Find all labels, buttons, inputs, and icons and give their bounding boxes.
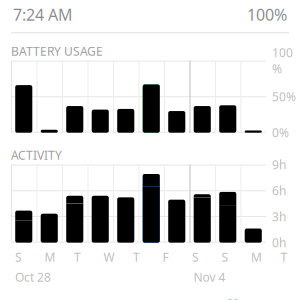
staticText: Screen Off bbox=[150, 295, 237, 300]
staticText: S bbox=[192, 249, 199, 265]
staticText: 100% bbox=[272, 45, 293, 77]
staticText: Oct 28 bbox=[15, 269, 51, 285]
staticText: 6h bbox=[272, 183, 286, 199]
staticText: 100% bbox=[247, 4, 287, 25]
staticText: S bbox=[15, 249, 22, 265]
staticText: BATTERY USAGE bbox=[11, 43, 103, 59]
staticText: T bbox=[133, 249, 140, 265]
staticText: S bbox=[221, 249, 228, 265]
staticText: 7:24 AM bbox=[13, 4, 73, 25]
staticText: T bbox=[280, 249, 287, 265]
staticText: M bbox=[251, 249, 262, 265]
staticText: 0h bbox=[272, 235, 286, 251]
staticText: Nov 4 bbox=[193, 269, 225, 285]
staticText: T bbox=[74, 249, 81, 265]
staticText: 0% bbox=[272, 125, 289, 141]
staticText: ACTIVITY bbox=[11, 147, 62, 163]
staticText: 3h bbox=[272, 209, 286, 225]
staticText: 9h bbox=[272, 157, 286, 173]
staticText: F bbox=[162, 249, 168, 265]
staticText: M bbox=[44, 249, 55, 265]
button[interactable]: Screen Off bbox=[150, 295, 287, 300]
staticText: 50% bbox=[272, 89, 296, 105]
staticText: W bbox=[103, 249, 114, 265]
